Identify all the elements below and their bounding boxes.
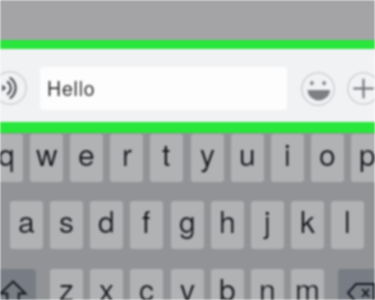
staticText: v bbox=[180, 269, 195, 300]
button[interactable]: h bbox=[211, 201, 244, 249]
staticText: y bbox=[200, 134, 215, 175]
button[interactable]: y bbox=[191, 134, 224, 182]
staticText: g bbox=[179, 201, 196, 242]
button[interactable]: k bbox=[291, 201, 324, 249]
staticText: i bbox=[284, 134, 291, 175]
staticText: b bbox=[219, 269, 236, 300]
staticText: p bbox=[359, 134, 375, 175]
button[interactable]: g bbox=[171, 201, 204, 249]
staticText: w bbox=[36, 134, 58, 175]
button[interactable]: q bbox=[0, 134, 23, 182]
button[interactable]: j bbox=[251, 201, 284, 249]
staticText: l bbox=[344, 201, 351, 242]
button[interactable]: m bbox=[291, 269, 324, 300]
staticText: h bbox=[219, 201, 236, 242]
staticText: j bbox=[264, 201, 271, 242]
button[interactable]: z bbox=[50, 269, 83, 300]
staticText: t bbox=[162, 134, 171, 175]
button[interactable]: r bbox=[110, 134, 143, 182]
button[interactable]: n bbox=[251, 269, 284, 300]
button[interactable]: e bbox=[70, 134, 103, 182]
staticText: s bbox=[59, 201, 74, 242]
staticText: Hello bbox=[47, 74, 96, 102]
button[interactable]: t bbox=[150, 134, 183, 182]
button[interactable]: p bbox=[351, 134, 375, 182]
button[interactable]: d bbox=[90, 201, 123, 249]
staticText: d bbox=[98, 201, 115, 242]
button[interactable]: l bbox=[331, 201, 364, 249]
staticText: x bbox=[99, 269, 114, 300]
button[interactable]: u bbox=[231, 134, 264, 182]
button[interactable]: Emoji bbox=[301, 72, 335, 106]
staticText: k bbox=[300, 201, 315, 242]
staticText: c bbox=[139, 269, 154, 300]
staticText: e bbox=[78, 134, 95, 175]
button[interactable]: Shift bbox=[0, 269, 36, 300]
button[interactable]: Add attachment bbox=[347, 72, 375, 105]
button[interactable]: f bbox=[130, 201, 163, 249]
staticText: f bbox=[142, 201, 151, 242]
button[interactable]: v bbox=[171, 269, 204, 300]
button[interactable]: c bbox=[130, 269, 163, 300]
staticText: u bbox=[239, 134, 256, 175]
button[interactable]: Hello bbox=[40, 67, 287, 110]
staticText: n bbox=[259, 269, 276, 300]
staticText: a bbox=[18, 201, 35, 242]
button[interactable]: x bbox=[90, 269, 123, 300]
button[interactable]: w bbox=[30, 134, 63, 182]
button[interactable]: Voice message bbox=[0, 71, 27, 105]
staticText: m bbox=[295, 269, 320, 300]
staticText: o bbox=[319, 134, 336, 175]
button[interactable]: a bbox=[10, 201, 43, 249]
button[interactable]: Backspace bbox=[338, 269, 375, 300]
button[interactable]: b bbox=[211, 269, 244, 300]
button[interactable]: s bbox=[50, 201, 83, 249]
button[interactable]: i bbox=[271, 134, 304, 182]
staticText: z bbox=[59, 269, 74, 300]
button[interactable]: o bbox=[311, 134, 344, 182]
staticText: q bbox=[0, 134, 15, 175]
staticText: r bbox=[122, 134, 132, 175]
